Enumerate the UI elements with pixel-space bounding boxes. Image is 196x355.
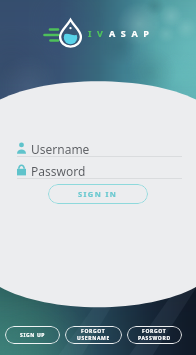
staticText: IV: [88, 27, 109, 39]
staticText: Username: [31, 141, 90, 155]
staticText: PASSWORD: [138, 335, 171, 342]
staticText: SIGN UP: [20, 332, 46, 339]
button[interactable]: FORGOT: [127, 326, 182, 344]
staticText: ASAP: [109, 27, 155, 39]
staticText: SIGN IN: [78, 189, 118, 199]
staticText: FORGOT: [142, 328, 167, 335]
button[interactable]: SIGN IN: [48, 184, 148, 204]
staticText: FORGOT: [81, 328, 106, 335]
staticText: Password: [31, 163, 86, 177]
staticText: USERNAME: [77, 335, 110, 342]
button[interactable]: FORGOT: [65, 326, 122, 344]
button[interactable]: SIGN UP: [5, 326, 60, 344]
